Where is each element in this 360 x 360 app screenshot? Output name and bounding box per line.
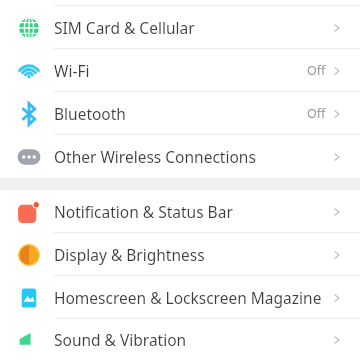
other: Other Wireless Connections [16, 144, 42, 170]
other: Sound and Vibration [16, 327, 42, 353]
button[interactable]: Notification and Status Bar [0, 190, 360, 233]
button[interactable]: Sound and Vibration [0, 319, 360, 360]
staticText: Bluetooth [54, 103, 307, 124]
other: SIM Card and Cellular [16, 15, 42, 41]
staticText: Homescreen & Lockscreen Magazine [54, 287, 332, 308]
other: Bluetooth [16, 101, 42, 127]
other: Notification and Status Bar [16, 199, 42, 225]
button[interactable]: Display and Brightness [0, 233, 360, 276]
button[interactable]: Other Wireless Connections [0, 135, 360, 178]
other: Wi-Fi [16, 58, 42, 84]
staticText: Off [307, 105, 326, 122]
button[interactable]: Wi-Fi [0, 49, 360, 92]
staticText: Notification & Status Bar [54, 201, 332, 222]
button[interactable]: Bluetooth [0, 92, 360, 135]
staticText: Display & Brightness [54, 244, 332, 265]
staticText: Other Wireless Connections [54, 146, 332, 167]
staticText: SIM Card & Cellular [54, 17, 332, 38]
button[interactable]: SIM Card and Cellular [0, 6, 360, 49]
other: Display and Brightness [16, 242, 42, 268]
staticText: Wi-Fi [54, 60, 307, 81]
other: Homescreen and Lockscreen Magazine [16, 285, 42, 311]
staticText: Off [307, 62, 326, 79]
button[interactable]: Homescreen and Lockscreen Magazine [0, 276, 360, 319]
staticText: Sound & Vibration [54, 329, 332, 350]
